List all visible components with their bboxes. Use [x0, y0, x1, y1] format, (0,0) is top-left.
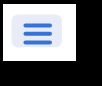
button[interactable]: Menu [12, 15, 62, 48]
